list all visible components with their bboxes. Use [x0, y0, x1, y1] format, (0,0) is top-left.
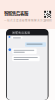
staticText: 扫码体验	[44, 18, 52, 22]
staticText: 智能售后客服	[4, 10, 28, 16]
button[interactable]: Scan QR code	[44, 11, 52, 22]
staticText: 智能售后客服	[12, 31, 30, 35]
staticText: 一站式全渠道智能客服解决方案	[4, 18, 46, 22]
